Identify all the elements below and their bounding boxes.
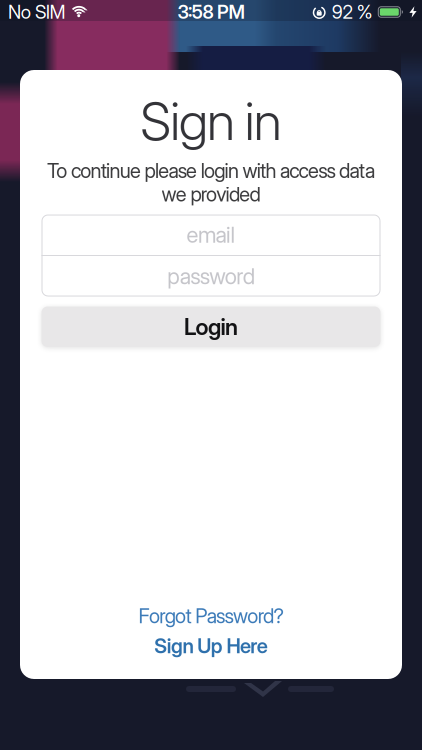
button[interactable]: Forgot Password? xyxy=(138,607,283,625)
staticText: Sign in xyxy=(140,89,282,152)
staticText: we provided xyxy=(161,182,260,206)
staticText: email xyxy=(186,221,235,248)
staticText: password xyxy=(167,263,255,289)
button[interactable]: password xyxy=(41,256,380,296)
button[interactable]: Login xyxy=(41,306,380,347)
button[interactable]: email xyxy=(41,214,380,255)
staticText: Sign Up Here xyxy=(154,634,268,658)
button[interactable]: Sign Up Here xyxy=(154,637,268,655)
staticText: 92 % xyxy=(332,1,373,23)
staticText: To continue please login with access dat… xyxy=(47,159,375,183)
staticText: No SIM xyxy=(8,1,65,23)
staticText: Forgot Password? xyxy=(138,604,283,628)
staticText: 3:58 PM xyxy=(177,1,245,23)
staticText: Login xyxy=(184,313,238,340)
